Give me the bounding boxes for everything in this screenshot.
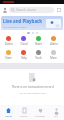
button[interactable]: Store	[1, 50, 16, 60]
staticText: Store	[5, 56, 12, 60]
staticText: go to add a device now	[20, 91, 46, 94]
button[interactable]: Alarm	[46, 36, 61, 46]
staticText: Help	[21, 56, 27, 60]
staticText: There is no transaction record	[11, 85, 54, 89]
button[interactable]: Cloud	[16, 36, 31, 46]
button[interactable]: Device	[1, 36, 16, 46]
button[interactable]: Search device	[9, 7, 54, 13]
staticText: More	[50, 56, 57, 60]
staticText: Device	[20, 114, 28, 117]
button[interactable]: Add device	[56, 7, 62, 13]
button[interactable]: Home	[0, 107, 16, 118]
button[interactable]: Live and Playback	[1, 16, 63, 30]
staticText: Message	[35, 114, 45, 117]
button[interactable]: Account	[2, 7, 8, 13]
staticText: Alarm	[50, 42, 58, 46]
button[interactable]: Device	[16, 107, 32, 118]
staticText: Tools	[35, 56, 42, 60]
staticText: Share	[35, 42, 42, 46]
staticText: Add a device to start	[3, 25, 26, 28]
staticText: Search device	[16, 8, 37, 12]
staticText: Home	[5, 114, 12, 117]
button[interactable]: Me	[48, 107, 64, 118]
staticText: Me	[54, 114, 58, 117]
button[interactable]: Message	[32, 107, 48, 118]
staticText: Live and Playback	[3, 18, 43, 24]
staticText: Cloud	[20, 42, 28, 46]
button[interactable]: More	[46, 50, 61, 60]
staticText: Device	[5, 42, 13, 46]
button[interactable]: Tools	[31, 50, 46, 60]
button[interactable]: Share	[31, 36, 46, 46]
button[interactable]: Help	[16, 50, 31, 60]
